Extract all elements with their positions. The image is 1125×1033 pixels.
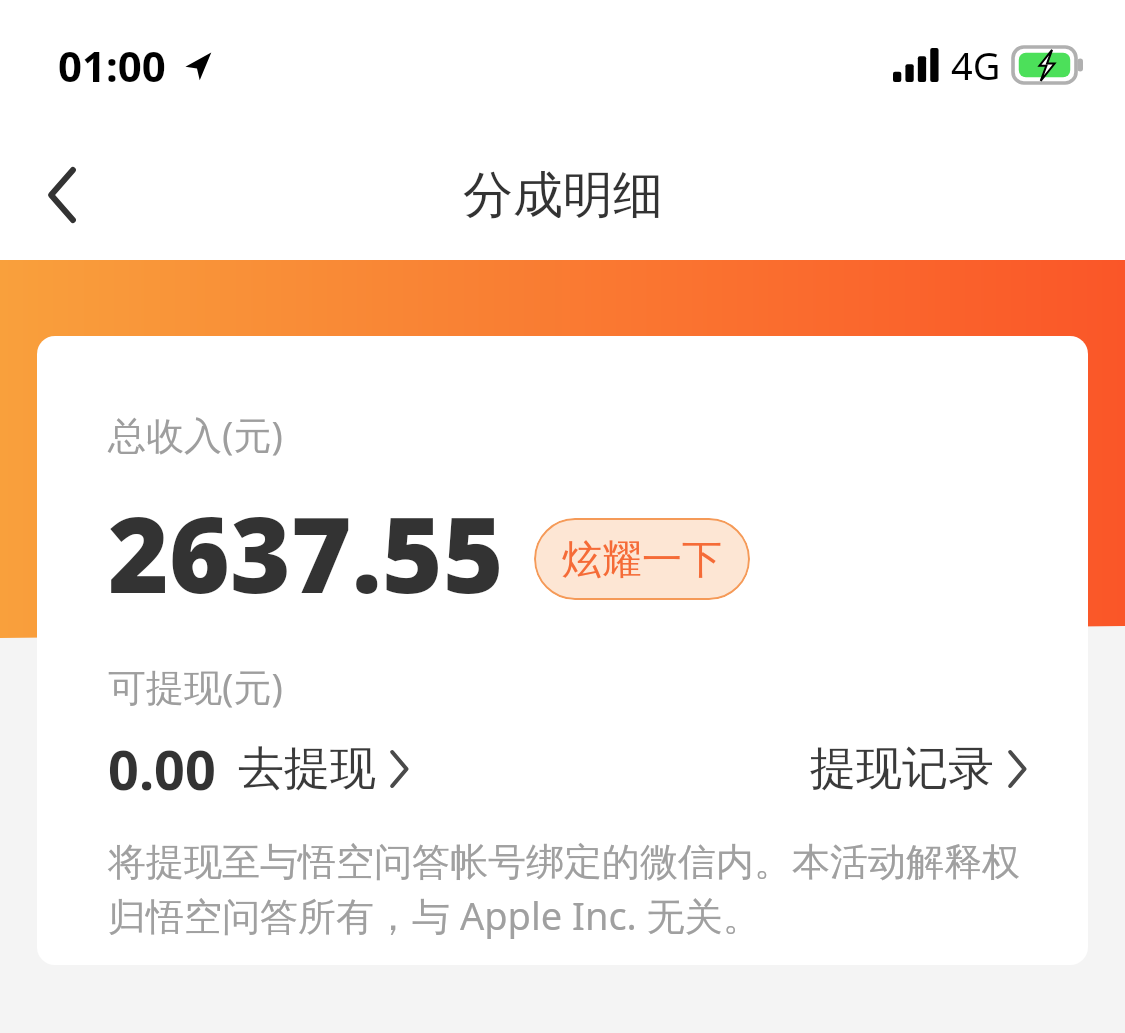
staticText: 将提现至与悟空问答帐号绑定的微信内。本活动解释权归悟空问答所有，与 Apple …	[108, 838, 1026, 942]
staticText: 分成明细	[463, 164, 663, 227]
button[interactable]: Back	[22, 155, 102, 235]
staticText: 总收入(元)	[108, 408, 283, 460]
button[interactable]: 炫耀一下	[534, 518, 750, 600]
staticText: 01:00	[58, 37, 166, 94]
staticText: 炫耀一下	[562, 534, 722, 584]
staticText: 0.00	[108, 732, 216, 806]
staticText: 提现记录	[810, 740, 994, 798]
staticText: 4G	[951, 39, 1001, 91]
button[interactable]: 去提现	[238, 734, 408, 804]
staticText: 去提现	[238, 740, 376, 798]
button[interactable]: 提现记录	[810, 734, 1026, 804]
staticText: 2637.55	[108, 482, 504, 624]
staticText: 可提现(元)	[108, 660, 283, 712]
